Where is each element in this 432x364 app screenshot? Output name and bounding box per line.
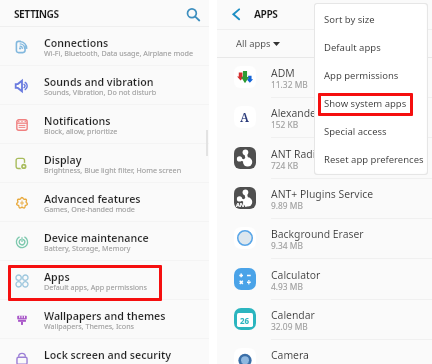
button[interactable]: Connections bbox=[0, 27, 209, 66]
button[interactable]: Reset app preferences bbox=[315, 145, 426, 173]
button[interactable]: Default apps bbox=[315, 33, 426, 61]
staticText: Wallpapers, Themes, Icons bbox=[44, 321, 135, 331]
staticText: Sort by size bbox=[324, 13, 375, 26]
staticText: Block, allow, prioritize bbox=[44, 126, 118, 136]
staticText: 4.93 MB bbox=[271, 281, 303, 292]
staticText: Wallpapers and themes bbox=[44, 309, 166, 323]
button[interactable]: All apps bbox=[217, 30, 432, 57]
staticText: SETTINGS bbox=[14, 7, 59, 21]
button[interactable]: A bbox=[217, 97, 432, 137]
button[interactable]: ADM bbox=[217, 57, 432, 97]
staticText: Default apps, App permissions bbox=[44, 282, 147, 292]
staticText: Calendar bbox=[271, 308, 315, 322]
staticText: 11.32 MB bbox=[271, 79, 308, 90]
button[interactable]: Sort by size bbox=[315, 5, 426, 33]
staticText: Camera bbox=[271, 348, 309, 362]
staticText: Sounds and vibration bbox=[44, 75, 154, 89]
staticText: A bbox=[240, 109, 250, 125]
staticText: Alexander bbox=[271, 106, 321, 120]
staticText: 724 KB bbox=[271, 160, 299, 171]
staticText: Lock screen and security bbox=[44, 348, 171, 362]
staticText: Special access bbox=[324, 125, 387, 138]
button[interactable]: Device maintenance bbox=[0, 222, 209, 261]
staticText: ANT Radio bbox=[271, 147, 322, 161]
staticText: 152 KB bbox=[271, 119, 299, 130]
staticText: 26 bbox=[240, 315, 250, 326]
button[interactable]: Special access bbox=[315, 117, 426, 145]
staticText: Display bbox=[44, 153, 82, 167]
staticText: 9.89 MB bbox=[271, 200, 303, 211]
staticText: ADM bbox=[271, 66, 295, 80]
button[interactable]: Search bbox=[184, 5, 202, 23]
staticText: Battery, Storage, Memory bbox=[44, 243, 131, 253]
staticText: Show system apps bbox=[324, 97, 407, 110]
staticText: Advanced features bbox=[44, 192, 141, 206]
button[interactable]: Notifications bbox=[0, 105, 209, 144]
button[interactable]: Sounds and vibration bbox=[0, 66, 209, 105]
button[interactable]: ANT Radio bbox=[217, 138, 432, 178]
button[interactable]: Advanced features bbox=[0, 183, 209, 222]
staticText: ANT+ Plugins Service bbox=[271, 187, 374, 201]
staticText: ANT bbox=[236, 201, 248, 208]
staticText: APPS bbox=[254, 7, 278, 21]
button[interactable]: ANT bbox=[217, 178, 432, 218]
staticText: Notifications bbox=[44, 114, 111, 128]
staticText: Wi-Fi, Bluetooth, Data usage, Airplane m… bbox=[44, 48, 193, 58]
staticText: Brightness, Blue light filter, Home scre… bbox=[44, 165, 182, 175]
button[interactable]: Calculator bbox=[217, 259, 432, 299]
staticText: Device maintenance bbox=[44, 231, 149, 245]
staticText: App permissions bbox=[324, 69, 399, 82]
staticText: Sounds, Vibration, Do not disturb bbox=[44, 87, 157, 97]
button[interactable]: Show system apps bbox=[315, 89, 426, 117]
button[interactable]: App permissions bbox=[315, 61, 426, 89]
staticText: Connections bbox=[44, 36, 109, 50]
staticText: All apps bbox=[236, 37, 271, 50]
staticText: Default apps bbox=[324, 41, 381, 54]
staticText: 32.09 MB bbox=[271, 321, 308, 332]
button[interactable]: 26 bbox=[217, 299, 432, 339]
staticText: 9.34 MB bbox=[271, 240, 303, 251]
staticText: Apps bbox=[44, 270, 70, 284]
button[interactable]: Apps bbox=[0, 261, 209, 300]
button[interactable]: Lock screen and security bbox=[0, 339, 209, 364]
staticText: Reset app preferences bbox=[324, 153, 424, 166]
staticText: Calculator bbox=[271, 268, 321, 282]
button[interactable]: Display bbox=[0, 144, 209, 183]
button[interactable]: Wallpapers and themes bbox=[0, 300, 209, 339]
staticText: Background Eraser bbox=[271, 227, 364, 241]
button[interactable]: Back bbox=[230, 6, 242, 22]
button[interactable]: Background Eraser bbox=[217, 218, 432, 258]
button[interactable]: Camera bbox=[217, 339, 432, 364]
staticText: Games, One-handed mode bbox=[44, 204, 135, 214]
